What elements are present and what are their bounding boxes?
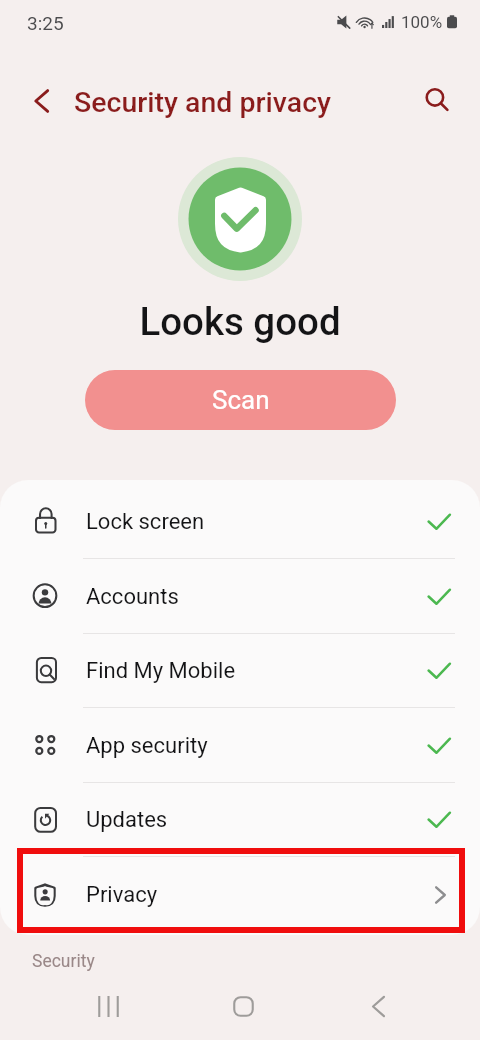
button[interactable]: Accounts <box>0 559 480 634</box>
button[interactable]: Back <box>348 977 408 1035</box>
button[interactable]: Search <box>414 77 460 123</box>
staticText: Updates <box>86 807 168 833</box>
staticText: 100% <box>401 12 443 32</box>
staticText: Lock screen <box>86 509 205 535</box>
button[interactable]: Recent apps <box>78 977 138 1035</box>
staticText: Security <box>32 951 95 972</box>
staticText: App security <box>86 733 208 759</box>
button[interactable]: Back <box>19 78 65 124</box>
staticText: Privacy <box>86 882 158 908</box>
button[interactable]: Privacy <box>0 857 480 932</box>
staticText: 3:25 <box>27 12 64 34</box>
staticText: Find My Mobile <box>86 658 236 684</box>
button[interactable]: Home <box>213 977 273 1035</box>
staticText: Looks good <box>0 299 480 344</box>
staticText: Scan <box>212 385 270 415</box>
button[interactable]: Find My Mobile <box>0 633 480 708</box>
staticText: Security and privacy <box>74 86 331 119</box>
button[interactable]: Updates <box>0 782 480 857</box>
staticText: Accounts <box>86 584 179 610</box>
button[interactable]: Lock screen <box>0 484 480 559</box>
button[interactable]: Scan <box>85 370 396 430</box>
button[interactable]: App security <box>0 708 480 783</box>
